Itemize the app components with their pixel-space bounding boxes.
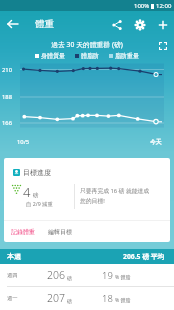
button[interactable]: 記錄體重 (4, 221, 42, 242)
staticText: 210 (2, 66, 12, 74)
staticText: 4 (23, 183, 31, 201)
button[interactable]: 編輯目標 (42, 221, 78, 242)
staticText: 206 (47, 268, 65, 282)
button[interactable]: 週一 (0, 287, 174, 309)
staticText: 本週 (7, 252, 21, 261)
staticText: 磅 (33, 192, 39, 199)
staticText: % 體脂 (115, 274, 131, 281)
staticText: 編輯目標 (48, 228, 72, 236)
staticText: 188 (2, 93, 12, 101)
staticText: % 體脂 (115, 297, 131, 304)
button[interactable]: Add (151, 13, 174, 36)
staticText: 12:00 (156, 2, 172, 10)
button[interactable]: Settings (128, 13, 151, 36)
staticText: 週一 (7, 295, 18, 302)
staticText: 磅 (67, 298, 72, 304)
button[interactable]: Back (0, 11, 26, 37)
staticText: 206.5 磅 平均 (123, 252, 165, 261)
staticText: 脂肪重量 (115, 52, 139, 60)
staticText: 今天 (150, 138, 162, 145)
staticText: 記錄體重 (11, 228, 35, 236)
staticText: 目標進度 (23, 168, 51, 177)
staticText: 18 (102, 292, 113, 305)
staticText: 100% (134, 2, 150, 10)
staticText: 週四 (7, 272, 18, 279)
staticText: 過去 30 天的體重群 (磅) (0, 40, 174, 49)
button[interactable]: 週四 (0, 264, 174, 286)
staticText: 體脂肪 (81, 52, 99, 60)
staticText: 19 (102, 269, 113, 282)
staticText: 10/5 (17, 138, 30, 146)
staticText: 自 2/9 減重 (26, 200, 53, 207)
staticText: 體重 (35, 18, 54, 30)
staticText: 166 (2, 119, 12, 127)
button[interactable]: Expand chart (157, 40, 169, 52)
staticText: 磅 (67, 275, 72, 281)
staticText: 只要再完成 16 磅 就能達成 您的目標! (80, 187, 170, 205)
staticText: 207 (47, 291, 65, 305)
button[interactable]: Share (105, 13, 128, 36)
staticText: 身體質量 (41, 52, 65, 60)
